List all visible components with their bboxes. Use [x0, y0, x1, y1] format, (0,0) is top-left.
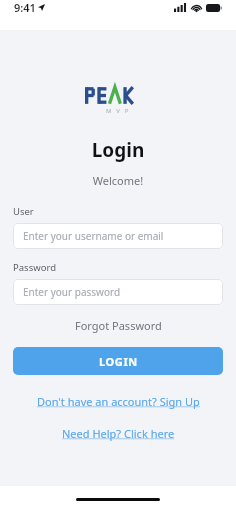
- button[interactable]: Enter your password: [13, 279, 223, 305]
- staticText: Login: [13, 137, 223, 163]
- staticText: LOGIN: [99, 354, 138, 369]
- staticText: Forgot Password: [75, 318, 162, 333]
- staticText: Welcome!: [13, 173, 223, 188]
- staticText: User: [13, 205, 34, 218]
- staticText: Enter your password: [23, 285, 121, 299]
- staticText: M V P: [106, 107, 130, 115]
- button[interactable]: Forgot Password: [13, 315, 223, 336]
- button[interactable]: Need Help? Click here: [13, 424, 223, 443]
- staticText: Need Help? Click here: [62, 426, 175, 441]
- button[interactable]: Enter your username or email: [13, 223, 223, 249]
- staticText: Password: [13, 261, 56, 274]
- staticText: Don't have an account? Sign Up: [37, 394, 200, 409]
- button[interactable]: LOGIN: [13, 347, 223, 375]
- staticText: Enter your username or email: [23, 229, 164, 243]
- staticText: 9:41: [14, 0, 36, 15]
- button[interactable]: Don't have an account? Sign Up: [13, 392, 223, 411]
